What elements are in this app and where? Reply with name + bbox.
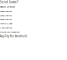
- staticText: Invite Code: [0, 22, 12, 25]
- staticText: Send Invite?: [0, 18, 12, 21]
- staticText: Agility For Android: [0, 34, 27, 38]
- staticText: Send Invite?: [0, 5, 15, 8]
- staticText: Send Invite?: [0, 14, 12, 17]
- staticText: Send Invite?: [0, 0, 18, 4]
- staticText: Add Invites: [0, 26, 12, 29]
- staticText: Send Invite?: [0, 9, 12, 13]
- staticText: Fields are required: [0, 30, 19, 33]
